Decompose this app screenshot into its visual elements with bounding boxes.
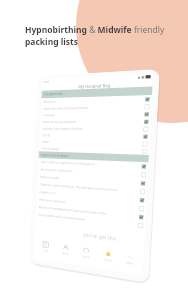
staticText: More — [126, 260, 134, 266]
button[interactable]: Saved — [98, 249, 117, 263]
staticText: Saved — [104, 257, 112, 262]
staticText: you've got this — [83, 231, 117, 243]
button[interactable]: Baby vests, sleepsuits — [36, 195, 146, 213]
staticText: Photo ID — [43, 113, 54, 117]
staticText: Water spray, hand held fan — [43, 120, 77, 124]
staticText: Baby vests, sleepsuits — [39, 198, 66, 204]
button[interactable]: Going home outfit and warm blanket — [36, 210, 145, 230]
button[interactable]: Notes — [57, 244, 74, 257]
staticText: packing lists — [25, 36, 79, 48]
button[interactable]: Photo ID — [40, 110, 151, 118]
button[interactable]: Dark towel, old nightie and comfy pyjama… — [38, 158, 148, 171]
button[interactable]: Toiletries, travel toothbrush, dry shamp… — [37, 180, 147, 196]
staticText: Hypnobirthing & Midwife friendly — [25, 24, 165, 36]
staticText: THE BIRTH BAG — [44, 92, 63, 96]
staticText: Nappies x 12 — [39, 190, 56, 195]
staticText: Bottles or breastfeeding kit, pump and m… — [39, 205, 106, 216]
button[interactable]: Guide — [76, 246, 95, 260]
button[interactable]: Pillow — [39, 138, 150, 147]
staticText: Nursing bras, breast pads — [40, 167, 73, 173]
staticText: Dark towel, old nightie and comfy pyjama… — [41, 160, 95, 166]
button[interactable]: Nursing bras, breast pads — [38, 165, 148, 179]
staticText: Going home outfit and warm blanket — [38, 213, 86, 222]
staticText: Lists — [43, 248, 48, 253]
staticText: Birth plan — [44, 100, 56, 104]
button[interactable]: Lip balm, hair bobbles, flip flops — [40, 125, 150, 132]
staticText: Phone charger — [41, 147, 60, 151]
staticText: Maternity pads — [40, 175, 59, 180]
button[interactable]: Nappies x 12 — [37, 188, 147, 205]
staticText: Toiletries, travel toothbrush, dry shamp… — [40, 183, 118, 192]
staticText: Lip balm, hair bobbles, flip flops — [42, 127, 83, 131]
button[interactable]: Maternity notes and hospital folder — [41, 102, 152, 112]
button[interactable]: Phone charger — [39, 145, 149, 155]
button[interactable]: Bottles or breastfeeding kit, pump and m… — [36, 203, 146, 222]
button[interactable]: Birth plan — [41, 95, 152, 105]
staticText: My Hospital Bag — [78, 82, 111, 89]
staticText: Guide — [82, 254, 90, 259]
staticText: Notes — [62, 251, 69, 256]
staticText: FOR AFTER THE BIRTH — [41, 153, 69, 158]
button[interactable]: More — [120, 252, 140, 267]
button[interactable]: Snacks — [40, 131, 150, 140]
button[interactable]: Maternity pads — [38, 173, 148, 188]
staticText: Maternity notes and hospital folder — [43, 106, 89, 111]
staticText: Pillow — [42, 140, 50, 144]
button[interactable]: Water spray, hand held fan — [40, 117, 151, 125]
staticText: Snacks — [42, 133, 51, 137]
button[interactable]: Lists — [37, 241, 54, 254]
staticText: 9:41 — [44, 80, 49, 84]
